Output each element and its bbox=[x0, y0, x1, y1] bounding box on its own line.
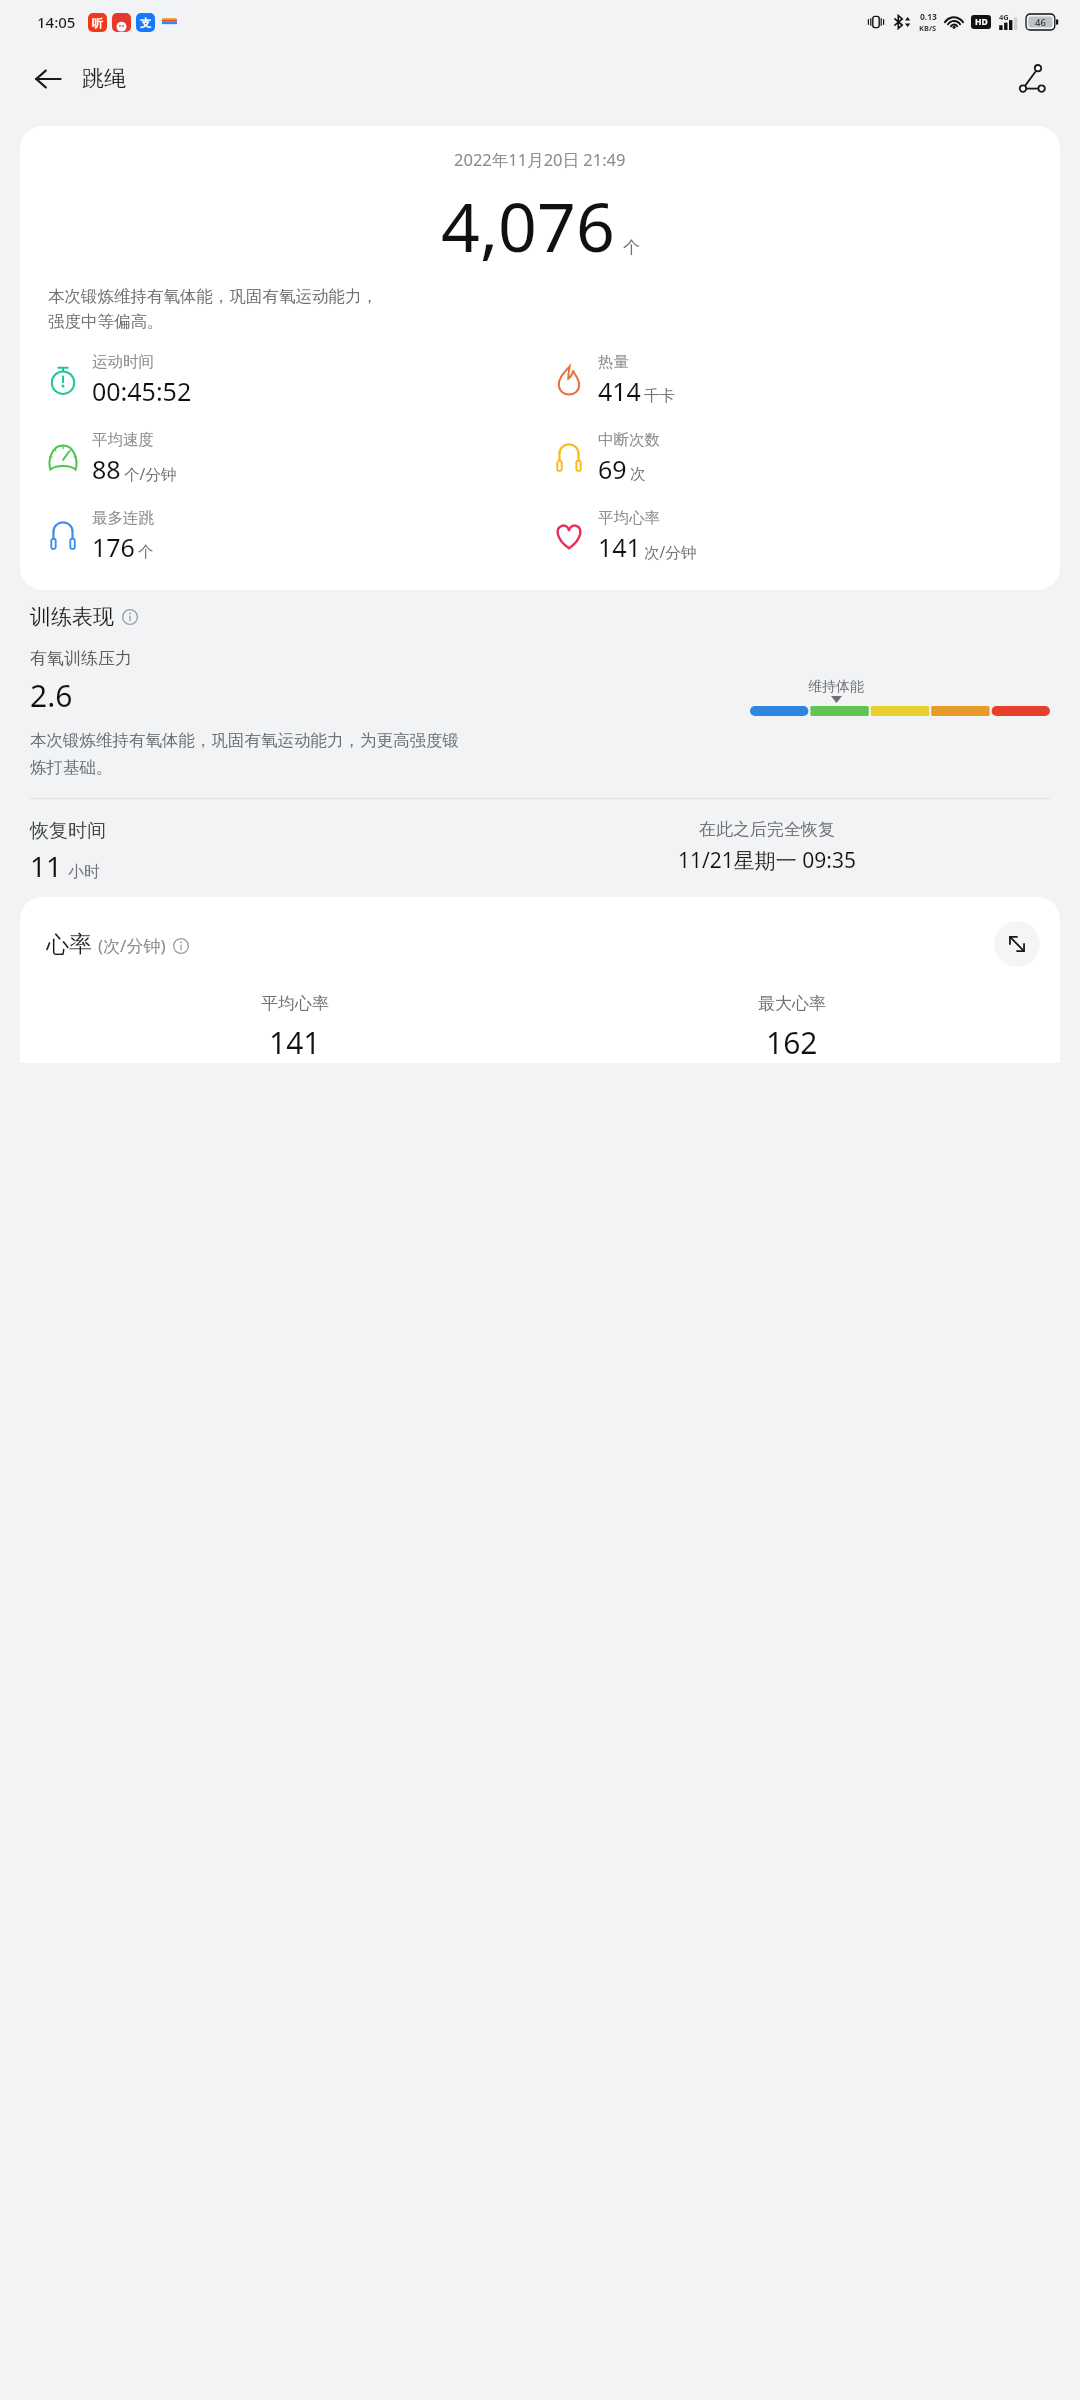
staticText: 69 bbox=[598, 452, 627, 486]
staticText: 141 bbox=[598, 530, 641, 564]
staticText: 平均心率 bbox=[261, 993, 329, 1014]
staticText: 维持体能 bbox=[808, 678, 864, 696]
staticText: 46 bbox=[1035, 16, 1046, 29]
staticText: 11 bbox=[30, 847, 63, 885]
staticText: 次/分钟 bbox=[644, 541, 697, 562]
staticText: 00:45:52 bbox=[92, 374, 192, 408]
button[interactable]: 心率 bbox=[20, 897, 1060, 1063]
staticText: (次/分钟) bbox=[98, 934, 166, 957]
staticText: 414 bbox=[598, 374, 641, 408]
staticText: 跳绳 bbox=[82, 65, 126, 93]
staticText: 11/21星期一 09:35 bbox=[678, 846, 856, 875]
staticText: 心率 bbox=[46, 930, 92, 959]
button[interactable]: Share bbox=[1008, 55, 1056, 103]
staticText: 本次锻炼维持有氧体能，巩固有氧运动能力，为更高强度锻 炼打基础。 bbox=[30, 730, 459, 778]
staticText: 本次锻炼维持有氧体能，巩固有氧运动能力， 强度中等偏高。 bbox=[48, 286, 378, 332]
staticText: 2022年11月20日 21:49 bbox=[454, 148, 626, 171]
staticText: 训练表现 bbox=[30, 604, 114, 630]
staticText: 最大心率 bbox=[758, 993, 826, 1014]
staticText: 在此之后完全恢复 bbox=[699, 819, 835, 840]
staticText: 平均速度 bbox=[92, 430, 154, 450]
staticText: 次 bbox=[630, 464, 646, 484]
staticText: 176 bbox=[92, 530, 135, 564]
staticText: 运动时间 bbox=[92, 352, 154, 372]
staticText: 热量 bbox=[598, 352, 629, 372]
staticText: 162 bbox=[766, 1022, 818, 1063]
staticText: 小时 bbox=[68, 862, 100, 882]
staticText: 4,076 bbox=[441, 179, 615, 272]
staticText: 4G bbox=[999, 12, 1009, 22]
staticText: 平均心率 bbox=[598, 508, 660, 528]
staticText: 2.6 bbox=[30, 675, 73, 716]
staticText: 有氧训练压力 bbox=[30, 648, 132, 669]
staticText: 个 bbox=[623, 237, 640, 258]
staticText: KB/S bbox=[919, 23, 937, 33]
staticText: 中断次数 bbox=[598, 430, 660, 450]
staticText: 恢复时间 bbox=[30, 819, 106, 843]
staticText: HD bbox=[975, 16, 988, 28]
button[interactable]: Back bbox=[24, 55, 72, 103]
staticText: 88 bbox=[92, 452, 121, 486]
staticText: 14:05 bbox=[37, 12, 76, 32]
staticText: 支 bbox=[140, 16, 151, 30]
staticText: 最多连跳 bbox=[92, 508, 154, 528]
button[interactable]: 2022年11月20日 21:49 bbox=[20, 126, 1060, 590]
button[interactable]: 训练表现 bbox=[30, 604, 138, 630]
staticText: 千卡 bbox=[644, 386, 675, 406]
staticText: 个/分钟 bbox=[124, 463, 177, 484]
button[interactable]: Expand bbox=[994, 921, 1040, 967]
staticText: 141 bbox=[269, 1022, 321, 1063]
staticText: 0.13 bbox=[920, 11, 937, 23]
staticText: 个 bbox=[138, 542, 154, 562]
staticText: 听 bbox=[92, 16, 103, 30]
